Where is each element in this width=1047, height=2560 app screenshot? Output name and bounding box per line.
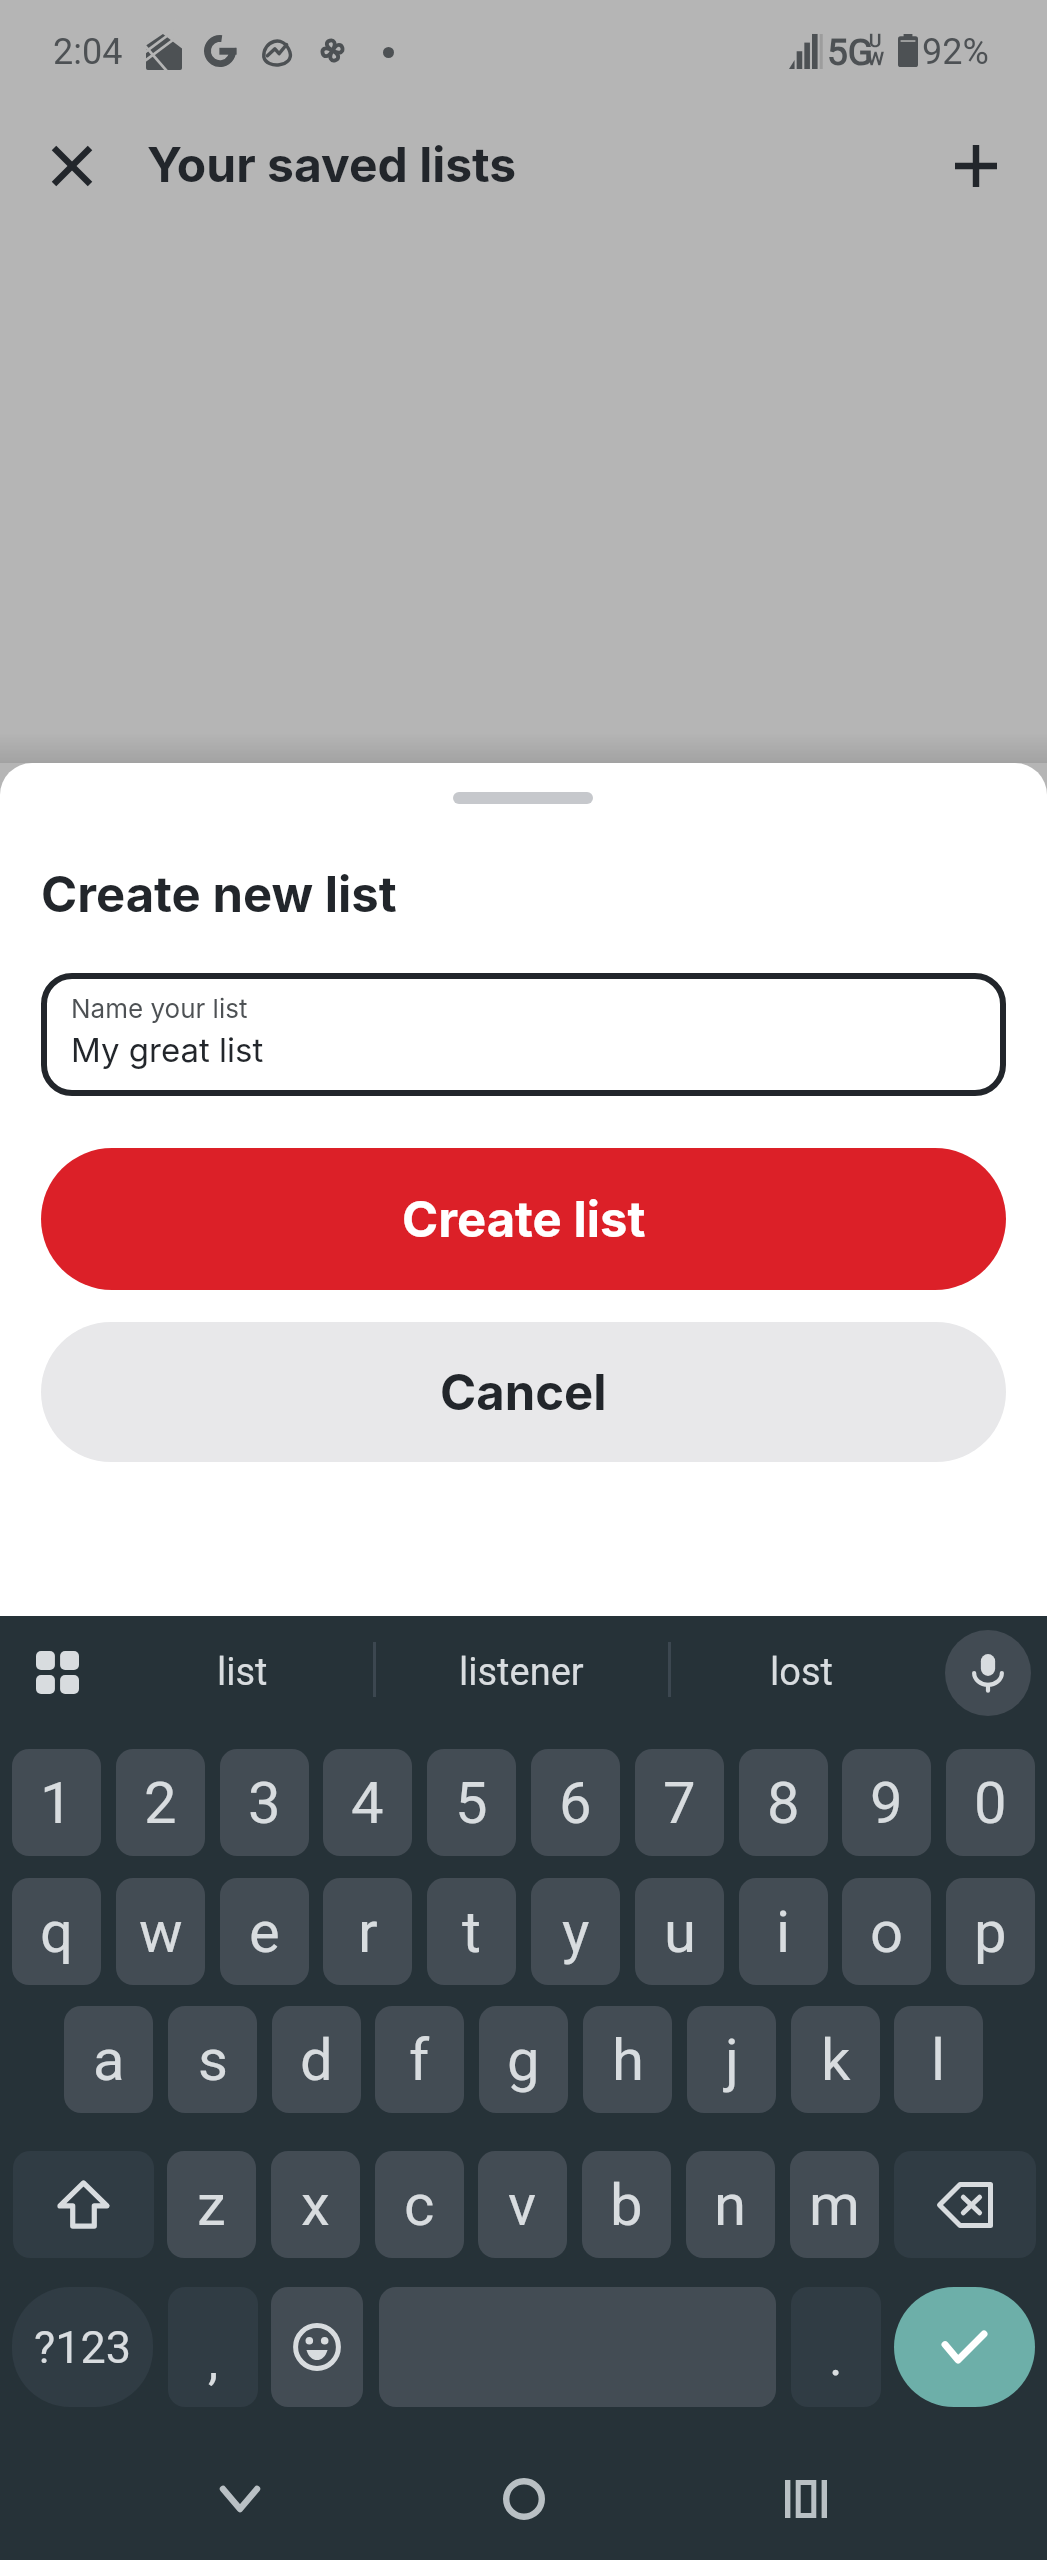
staticText: g xyxy=(507,2026,540,2094)
button[interactable]: a xyxy=(64,2006,153,2113)
staticText: 7 xyxy=(663,1769,696,1837)
button[interactable]: ?123 xyxy=(12,2287,153,2407)
button[interactable]: Close xyxy=(36,130,108,202)
button[interactable]: 2 xyxy=(116,1749,205,1856)
button[interactable]: Keyboard settings xyxy=(24,1639,90,1705)
staticText: h xyxy=(612,2026,644,2094)
button[interactable]: 7 xyxy=(635,1749,724,1856)
button[interactable]: Name your list xyxy=(41,973,1006,1096)
button[interactable]: Hide keyboard xyxy=(200,2459,280,2539)
button[interactable]: 1 xyxy=(12,1749,101,1856)
button[interactable]: Home xyxy=(484,2459,564,2539)
staticText: l xyxy=(931,2026,946,2094)
button[interactable]: 0 xyxy=(946,1749,1035,1856)
staticText: 5G xyxy=(827,31,873,74)
staticText: Create new list xyxy=(41,865,397,924)
staticText: 4 xyxy=(351,1769,384,1837)
staticText: list xyxy=(217,1650,268,1695)
staticText: f xyxy=(409,2026,430,2094)
staticText: 1 xyxy=(40,1769,73,1837)
button[interactable]: m xyxy=(790,2151,879,2258)
button[interactable]: Emoji xyxy=(271,2287,363,2407)
button[interactable]: 9 xyxy=(842,1749,931,1856)
staticText: v xyxy=(508,2171,537,2239)
button[interactable]: 6 xyxy=(531,1749,620,1856)
button[interactable]: Cancel xyxy=(41,1322,1006,1462)
staticText: lost xyxy=(770,1650,833,1695)
staticText: i xyxy=(776,1898,791,1966)
button[interactable]: l xyxy=(894,2006,983,2113)
staticText: z xyxy=(197,2171,226,2239)
button[interactable]: w xyxy=(116,1878,205,1985)
button[interactable]: o xyxy=(842,1878,931,1985)
staticText: m xyxy=(809,2171,860,2239)
staticText: w xyxy=(139,1898,183,1966)
staticText: q xyxy=(40,1898,73,1966)
button[interactable]: 5 xyxy=(427,1749,516,1856)
staticText: b xyxy=(610,2171,643,2239)
button[interactable]: i xyxy=(739,1878,828,1985)
button[interactable]: . xyxy=(791,2287,881,2407)
button[interactable]: Shift xyxy=(13,2151,154,2258)
button[interactable]: , xyxy=(168,2287,258,2407)
staticText: 2 xyxy=(144,1769,177,1837)
button[interactable]: c xyxy=(375,2151,464,2258)
button[interactable]: Recent apps xyxy=(766,2459,846,2539)
button[interactable]: q xyxy=(12,1878,101,1985)
button[interactable]: g xyxy=(479,2006,568,2113)
button[interactable]: list xyxy=(112,1624,372,1720)
button[interactable]: f xyxy=(375,2006,464,2113)
button[interactable]: Create list xyxy=(41,1148,1006,1290)
button[interactable]: Enter xyxy=(894,2287,1035,2407)
staticText: listener xyxy=(459,1650,584,1695)
staticText: 5 xyxy=(455,1769,488,1837)
button[interactable]: d xyxy=(272,2006,361,2113)
staticText: u xyxy=(664,1898,696,1966)
button[interactable]: t xyxy=(427,1878,516,1985)
staticText: s xyxy=(198,2026,228,2094)
button[interactable]: 3 xyxy=(220,1749,309,1856)
button[interactable]: s xyxy=(168,2006,257,2113)
button[interactable]: n xyxy=(686,2151,775,2258)
staticText: 92% xyxy=(922,31,989,73)
staticText: 8 xyxy=(767,1769,800,1837)
button[interactable]: Create new list xyxy=(940,130,1012,202)
button[interactable]: r xyxy=(323,1878,412,1985)
staticText: x xyxy=(301,2171,330,2239)
button[interactable]: 8 xyxy=(739,1749,828,1856)
staticText: Name your list xyxy=(71,993,248,1024)
button[interactable]: u xyxy=(635,1878,724,1985)
button[interactable]: p xyxy=(946,1878,1035,1985)
button[interactable]: j xyxy=(687,2006,776,2113)
button[interactable]: b xyxy=(582,2151,671,2258)
staticText: 6 xyxy=(559,1769,592,1837)
staticText: Your saved lists xyxy=(147,135,517,193)
staticText: W xyxy=(867,47,884,69)
staticText: d xyxy=(300,2026,333,2094)
button[interactable]: listener xyxy=(361,1624,681,1720)
button[interactable]: Backspace xyxy=(894,2151,1036,2258)
button[interactable]: y xyxy=(531,1878,620,1985)
button[interactable]: e xyxy=(220,1878,309,1985)
button[interactable]: lost xyxy=(671,1624,931,1720)
staticText: o xyxy=(870,1898,904,1966)
button[interactable]: v xyxy=(478,2151,567,2258)
staticText: 3 xyxy=(248,1769,281,1837)
staticText: . xyxy=(829,2327,843,2388)
staticText: 9 xyxy=(870,1769,903,1837)
staticText: n xyxy=(714,2171,747,2239)
button[interactable]: 4 xyxy=(323,1749,412,1856)
button[interactable]: x xyxy=(271,2151,360,2258)
staticText: e xyxy=(249,1898,280,1966)
button[interactable]: k xyxy=(791,2006,880,2113)
staticText: k xyxy=(821,2026,851,2094)
staticText: a xyxy=(93,2026,125,2094)
button[interactable]: h xyxy=(583,2006,672,2113)
staticText: j xyxy=(725,2026,739,2094)
staticText: , xyxy=(208,2331,219,2392)
staticText: 0 xyxy=(974,1769,1007,1837)
staticText: p xyxy=(974,1898,1007,1966)
button[interactable]: Voice input xyxy=(945,1630,1031,1716)
button[interactable]: z xyxy=(167,2151,256,2258)
